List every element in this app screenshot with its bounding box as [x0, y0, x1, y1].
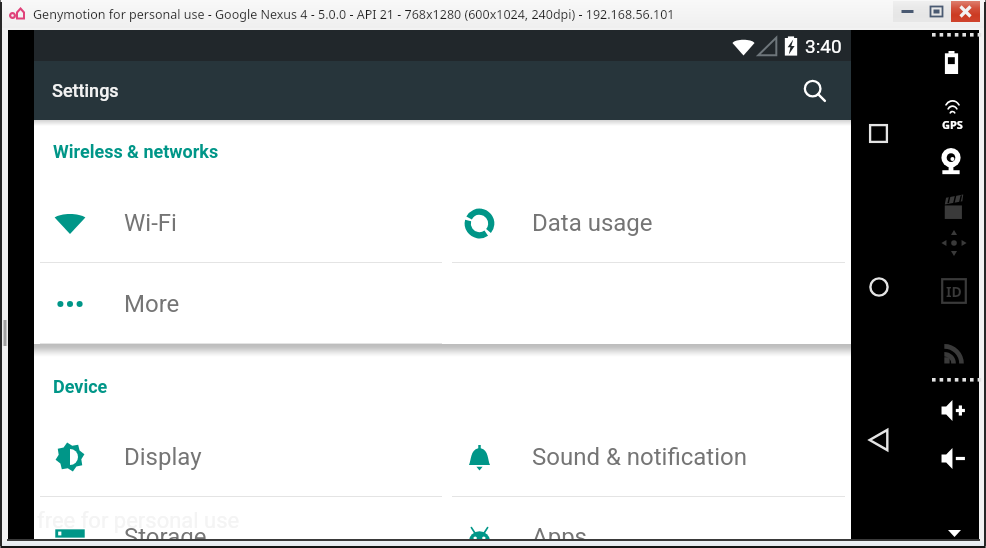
staticText: More: [124, 290, 180, 318]
button[interactable]: Storage: [34, 496, 442, 540]
button[interactable]: Back: [864, 426, 892, 454]
staticText: Display: [124, 443, 202, 471]
button[interactable]: Device identifiers: [929, 277, 979, 304]
button[interactable]: Volume down: [929, 447, 979, 470]
button[interactable]: Wi-Fi: [34, 182, 442, 263]
staticText: Sound & notification: [532, 443, 747, 471]
button[interactable]: Data usage: [442, 182, 851, 263]
button[interactable]: Window button: [922, 1, 951, 22]
staticText: free for personal use: [37, 508, 240, 534]
staticText: Genymotion for personal use - Google Nex…: [33, 6, 675, 23]
button[interactable]: Display: [34, 416, 442, 497]
button[interactable]: Recent apps: [864, 119, 892, 147]
button[interactable]: Expand: [929, 526, 979, 540]
button[interactable]: Apps: [442, 496, 851, 540]
staticText: Device: [53, 376, 108, 397]
staticText: Apps: [532, 523, 587, 540]
button[interactable]: More: [34, 263, 442, 344]
button[interactable]: Network: [929, 338, 979, 364]
button[interactable]: Window button: [951, 1, 980, 22]
staticText: Wi-Fi: [124, 209, 177, 237]
button[interactable]: D-pad: [929, 228, 979, 258]
staticText: GPS: [942, 117, 963, 132]
staticText: ID: [946, 282, 962, 301]
button[interactable]: Volume up: [929, 399, 979, 422]
button[interactable]: Battery: [929, 51, 979, 74]
button[interactable]: Sound & notification: [442, 416, 851, 497]
button[interactable]: Search: [795, 71, 835, 111]
staticText: Settings: [52, 80, 119, 101]
button[interactable]: Camera: [929, 147, 979, 175]
button[interactable]: Window button: [893, 1, 922, 22]
staticText: 3:40: [805, 35, 842, 57]
button[interactable]: Home: [865, 273, 893, 301]
staticText: Data usage: [532, 209, 653, 237]
staticText: Wireless & networks: [53, 141, 219, 162]
button[interactable]: Record video: [929, 194, 979, 220]
staticText: Storage: [124, 523, 207, 540]
